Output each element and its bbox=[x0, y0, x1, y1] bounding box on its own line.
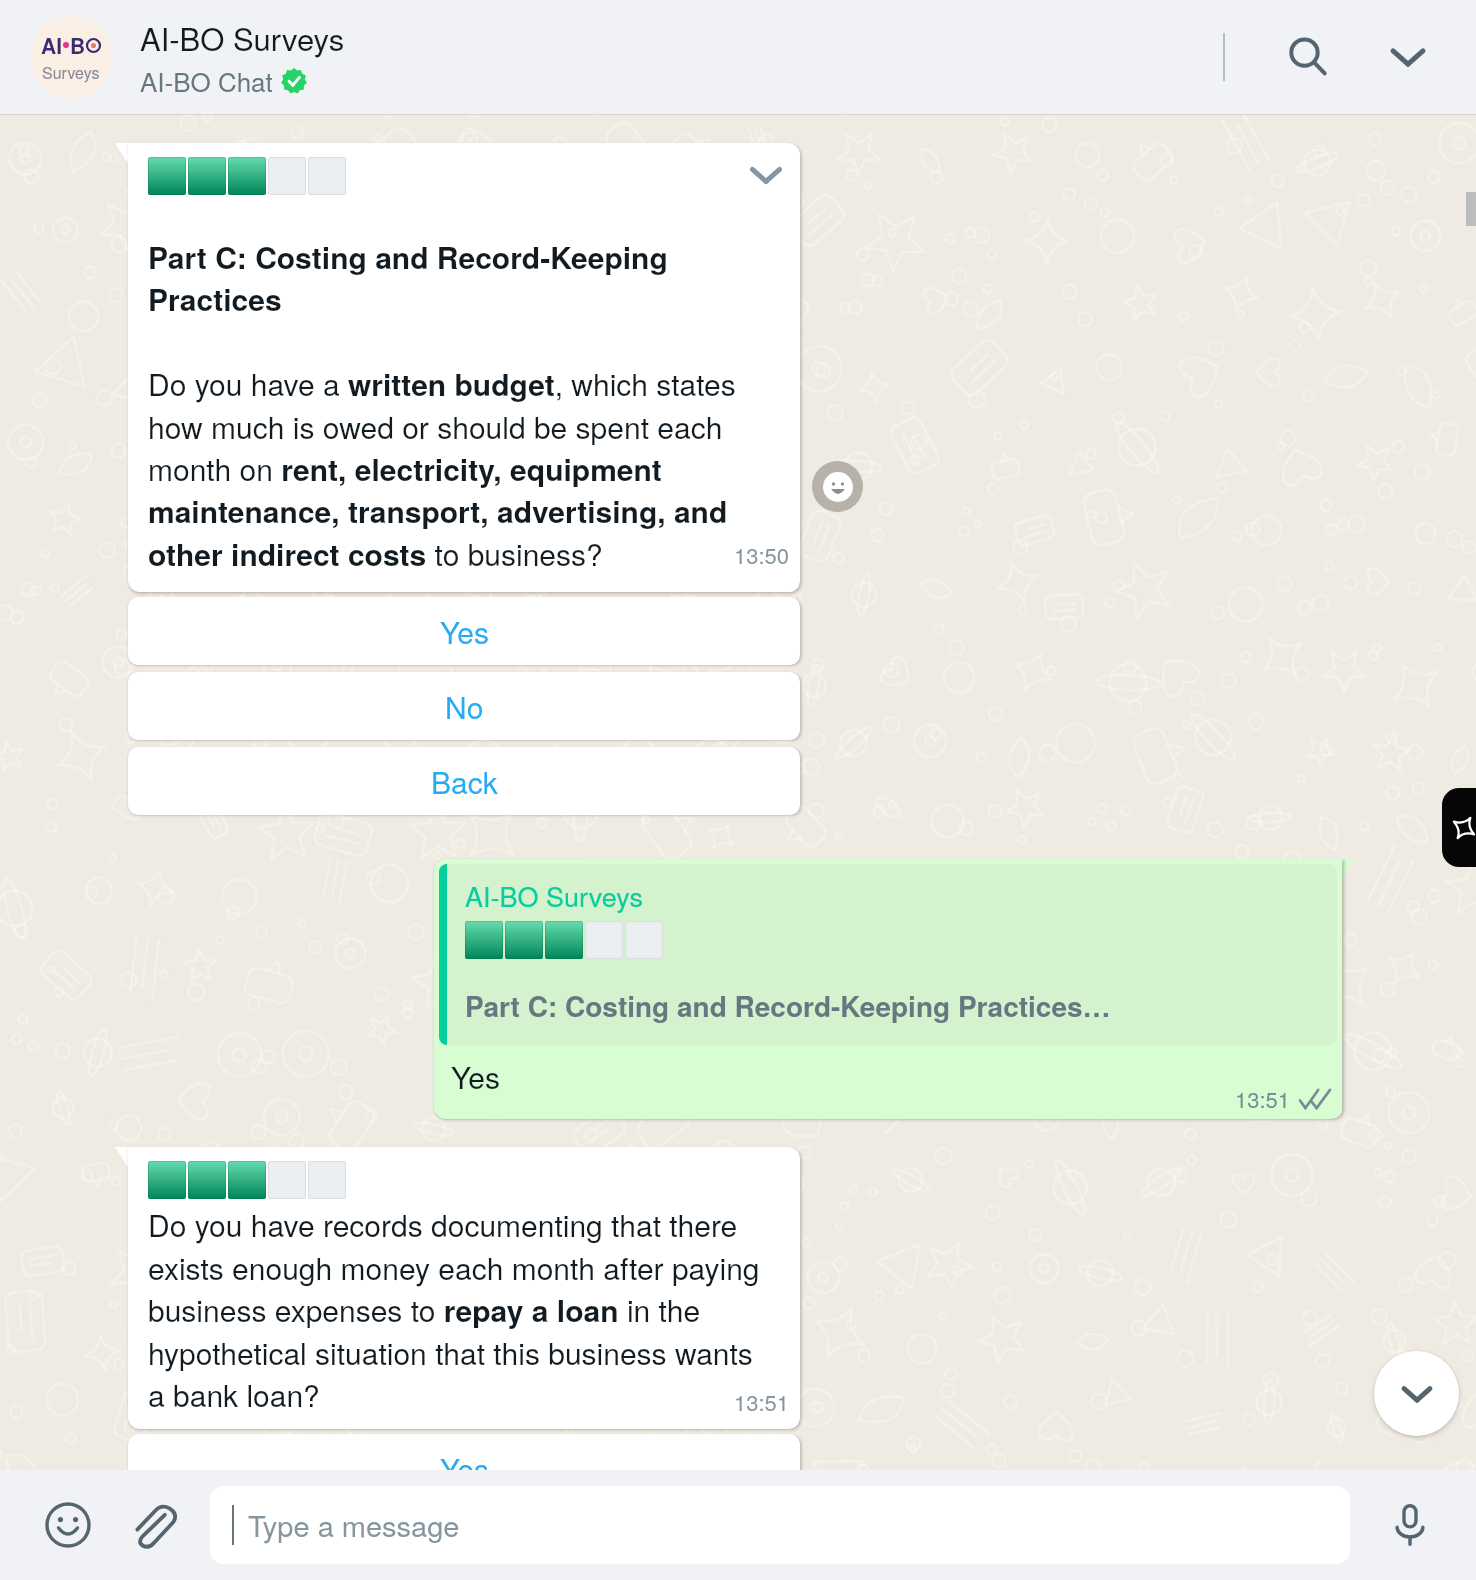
button[interactable]: Do you have records documenting that the… bbox=[128, 1147, 800, 1429]
staticText: Yes bbox=[440, 610, 489, 653]
button[interactable]: Emoji bbox=[32, 1489, 104, 1561]
staticText: 13:51 bbox=[734, 1386, 790, 1418]
button[interactable]: AI-BO Surveys bbox=[434, 859, 1342, 1119]
staticText: Do you have a written budget, which stat… bbox=[148, 362, 780, 575]
staticText: 13:50 bbox=[734, 539, 790, 571]
staticText: AI bbox=[41, 30, 62, 60]
staticText: Yes bbox=[451, 1055, 500, 1098]
staticText: B bbox=[70, 30, 86, 60]
staticText: Do you have records documenting that the… bbox=[148, 1203, 770, 1415]
button[interactable]: Scroll to bottom bbox=[1374, 1351, 1459, 1436]
button[interactable]: Message options bbox=[128, 143, 800, 592]
button[interactable]: Search bbox=[1277, 26, 1339, 88]
staticText: 13:51 bbox=[1235, 1083, 1291, 1115]
button[interactable]: Back bbox=[128, 747, 800, 815]
staticText: Back bbox=[431, 760, 498, 803]
staticText: AI-BO Surveys bbox=[140, 15, 345, 59]
staticText: Part C: Costing and Record-Keeping Pract… bbox=[465, 985, 1111, 1025]
button[interactable]: Yes bbox=[128, 597, 800, 665]
button[interactable]: Type a message bbox=[210, 1486, 1350, 1564]
staticText: AI-BO Chat bbox=[140, 62, 273, 99]
staticText: Surveys bbox=[42, 61, 100, 84]
staticText: AI-BO Surveys bbox=[465, 876, 643, 915]
button[interactable]: Meta AI bbox=[1442, 788, 1476, 867]
button[interactable]: No bbox=[128, 672, 800, 740]
staticText: Type a message bbox=[248, 1504, 460, 1546]
staticText: Part C: Costing and Record-Keeping Pract… bbox=[148, 235, 668, 320]
staticText: Yes bbox=[440, 1447, 489, 1490]
button[interactable]: React bbox=[812, 461, 863, 512]
button[interactable]: Attach bbox=[116, 1489, 188, 1561]
button[interactable]: Yes bbox=[128, 1434, 800, 1502]
button[interactable]: Voice message bbox=[1374, 1489, 1446, 1561]
button[interactable]: Message options bbox=[744, 153, 788, 197]
staticText: No bbox=[445, 685, 484, 728]
button[interactable]: Menu bbox=[1377, 26, 1439, 88]
